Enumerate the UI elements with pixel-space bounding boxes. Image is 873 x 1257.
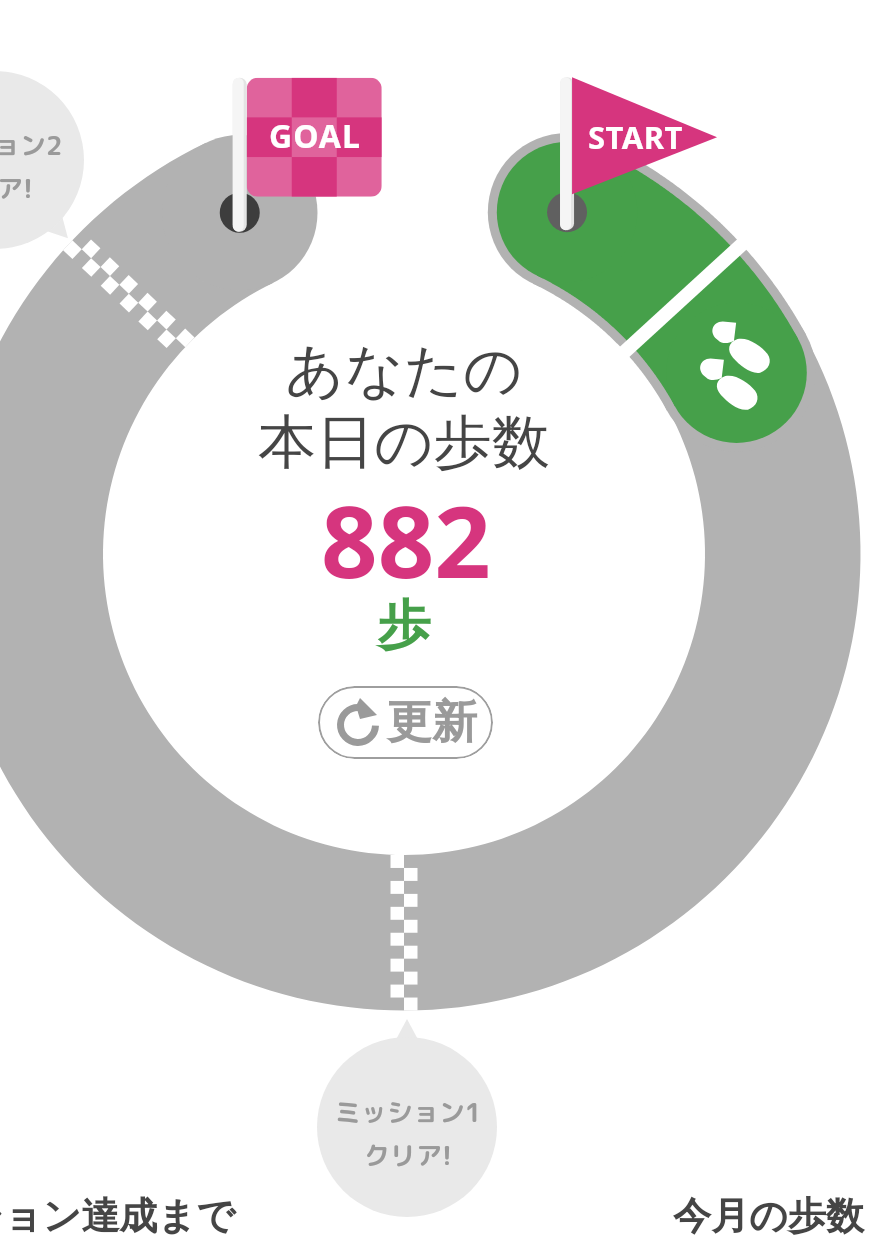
staticText: 歩 (204, 592, 604, 659)
staticText: 882 (206, 472, 606, 607)
staticText: GOAL (269, 114, 361, 158)
staticText: あなたの 本日の歩数 (204, 334, 604, 479)
staticText: 今月の歩数 (673, 1192, 864, 1240)
other: Refresh (336, 701, 380, 745)
staticText: 次のミッション達成まで (0, 1192, 236, 1240)
staticText: ミッション2 クリア! (0, 127, 79, 207)
staticText: 更新 (387, 694, 477, 751)
staticText: START (588, 116, 683, 158)
button[interactable]: Refresh (318, 686, 493, 759)
staticText: ミッション1 クリア! (318, 1094, 498, 1174)
